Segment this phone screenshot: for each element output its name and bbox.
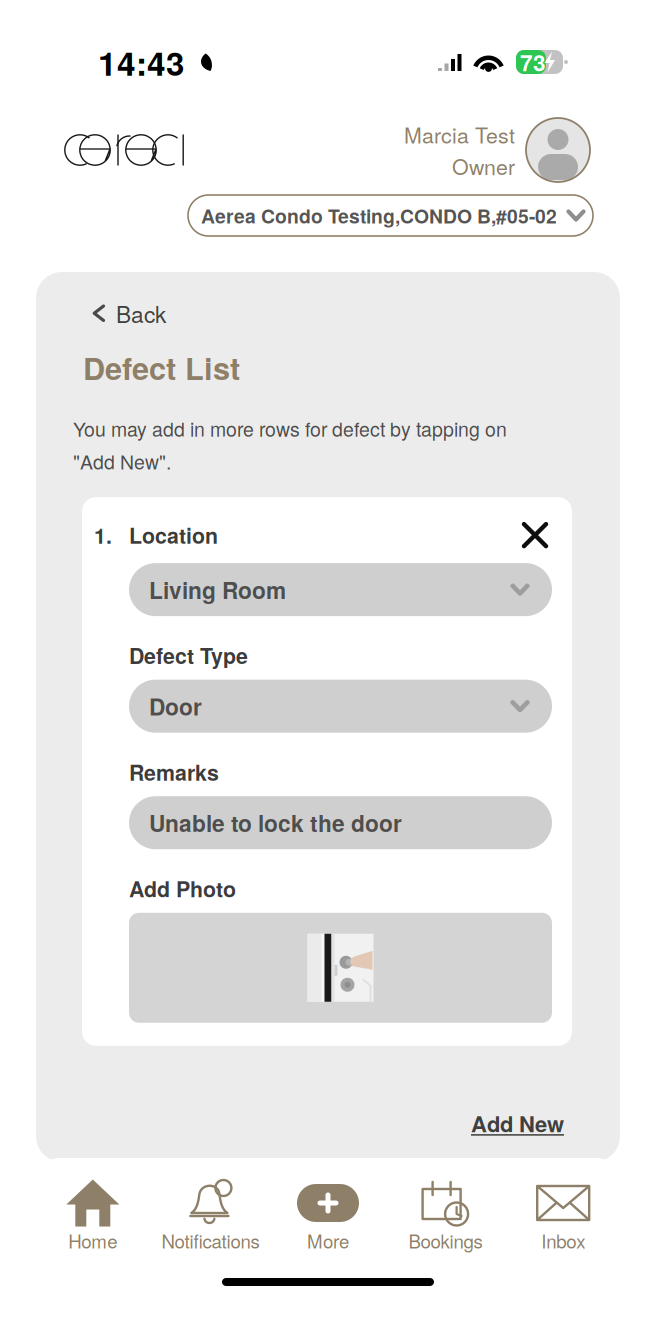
staticText: Inbox [541, 1227, 585, 1254]
button[interactable]: Home [34, 1158, 152, 1246]
staticText: 14:43 [98, 38, 185, 86]
staticText: Unable to lock the door [149, 806, 402, 839]
staticText: Back [116, 297, 166, 329]
button[interactable]: Bookings [387, 1158, 504, 1246]
staticText: Location [129, 520, 218, 550]
button[interactable]: Aerea Condo Testing,CONDO B,#05-02 [188, 195, 593, 236]
button[interactable]: More [269, 1158, 387, 1246]
button[interactable]: Door [129, 680, 552, 733]
button[interactable]: Unable to lock the door [129, 796, 552, 849]
button[interactable]: Add New [471, 1101, 620, 1145]
staticText: Notifications [161, 1227, 259, 1254]
staticText: You may add in more rows for defect by t… [73, 414, 507, 442]
staticText: Living Room [149, 573, 286, 606]
button[interactable]: Living Room [129, 563, 552, 616]
staticText: Remarks [129, 757, 219, 787]
staticText: Marcia Test [404, 119, 515, 149]
staticText: 73 [520, 46, 546, 78]
button[interactable]: Back [36, 272, 182, 338]
staticText: Add Photo [129, 873, 236, 904]
staticText: Defect List [83, 345, 240, 389]
staticText: Bookings [409, 1227, 483, 1254]
staticText: Defect Type [129, 640, 248, 671]
button[interactable]: Inbox [504, 1158, 622, 1246]
staticText: Add New [471, 1107, 564, 1139]
staticText: Owner [452, 150, 515, 181]
staticText: Home [68, 1227, 117, 1254]
staticText: "Add New". [73, 447, 171, 475]
staticText: 1. [94, 520, 112, 550]
button[interactable]: Remove defect [519, 519, 551, 551]
staticText: More [307, 1227, 349, 1254]
staticText: Door [149, 690, 202, 722]
button[interactable]: Notifications [152, 1158, 269, 1246]
staticText: Aerea Condo Testing,CONDO B,#05-02 [201, 202, 557, 229]
